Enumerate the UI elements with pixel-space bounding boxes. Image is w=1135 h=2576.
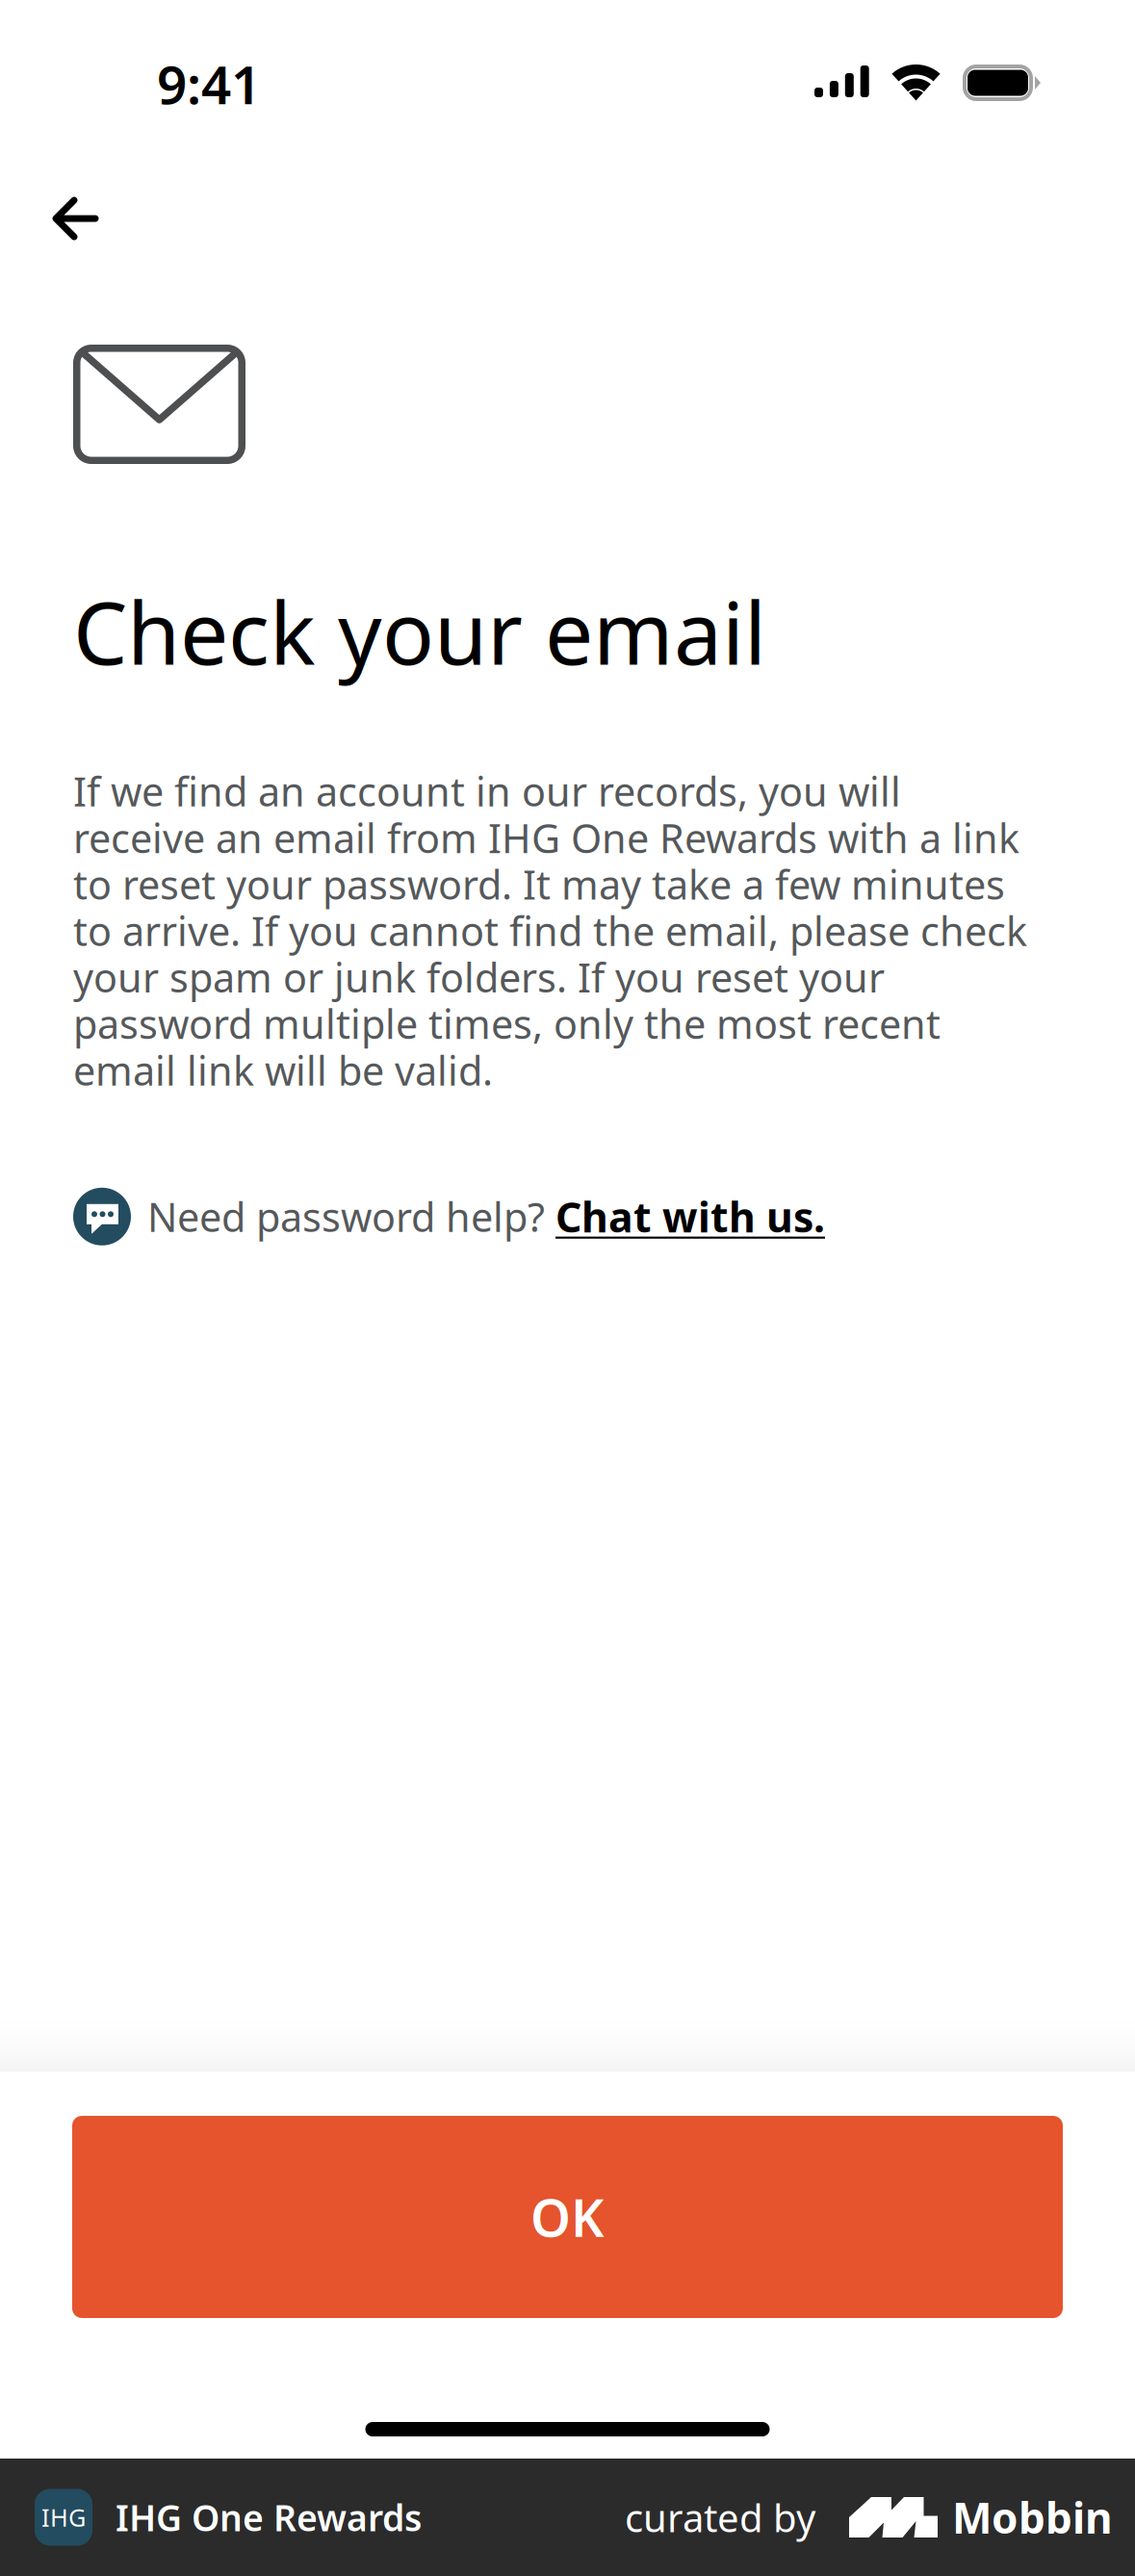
staticText: OK	[530, 2182, 605, 2252]
staticText: IHG One Rewards	[116, 2493, 422, 2542]
staticText: Mobbin	[952, 2488, 1113, 2546]
staticText: Chat with us.	[555, 1189, 825, 1244]
staticText: Need password help?	[147, 1189, 555, 1244]
button[interactable]: Need password help?	[73, 1188, 825, 1245]
staticText: If we find an account in our records, yo…	[73, 768, 1027, 1093]
staticText: Check your email	[73, 573, 766, 690]
staticText: curated by	[625, 2491, 815, 2544]
button[interactable]: OK	[72, 2116, 1063, 2318]
staticText: IHG	[41, 2501, 86, 2534]
staticText: 9:41	[157, 48, 261, 120]
button[interactable]: Back	[0, 111, 138, 260]
